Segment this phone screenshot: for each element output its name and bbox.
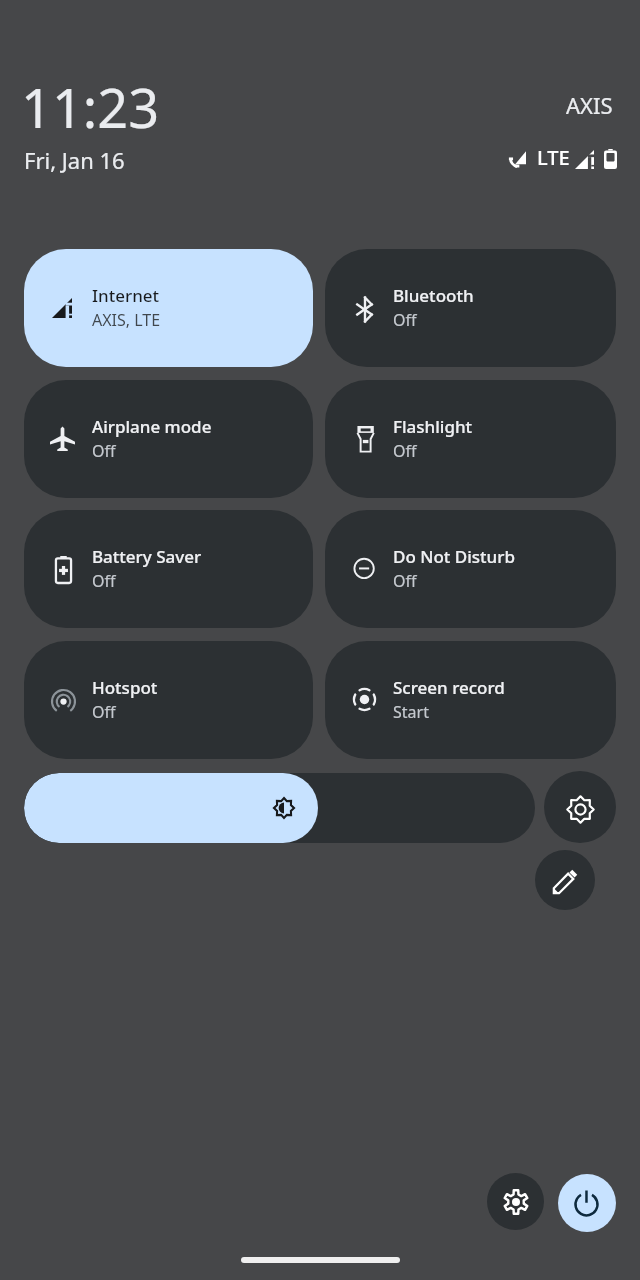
staticText: Off [393,309,417,331]
staticText: Flashlight [393,415,473,438]
staticText: Off [393,440,417,462]
staticText: AXIS, LTE [92,309,161,331]
staticText: Off [393,570,417,592]
staticText: Hotspot [92,676,158,699]
staticText: 11:23 [21,70,160,144]
staticText: AXIS [566,90,613,120]
button[interactable]: Hotspot [24,641,313,759]
button[interactable]: Battery Saver [24,510,313,628]
button[interactable]: Brightness [24,773,535,843]
button[interactable]: Flashlight [325,380,616,498]
button[interactable]: Settings [487,1173,544,1230]
button[interactable]: Internet [24,249,313,367]
button[interactable]: Screen record [325,641,616,759]
staticText: Fri, Jan 16 [24,145,125,175]
staticText: Screen record [393,676,505,699]
button[interactable]: Bluetooth [325,249,616,367]
button[interactable]: Airplane mode [24,380,313,498]
button[interactable]: Edit tiles [535,850,595,910]
staticText: Off [92,440,116,462]
staticText: Battery Saver [92,545,202,568]
button[interactable]: Do Not Disturb [325,510,616,628]
button[interactable]: Power [558,1174,616,1232]
staticText: Off [92,701,116,723]
button[interactable]: Brightness settings [544,771,616,843]
staticText: Internet [92,284,160,307]
staticText: Off [92,570,116,592]
staticText: Bluetooth [393,284,474,307]
staticText: Start [393,701,429,723]
staticText: Airplane mode [92,415,212,438]
staticText: Do Not Disturb [393,545,515,568]
staticText: LTE [537,144,570,171]
